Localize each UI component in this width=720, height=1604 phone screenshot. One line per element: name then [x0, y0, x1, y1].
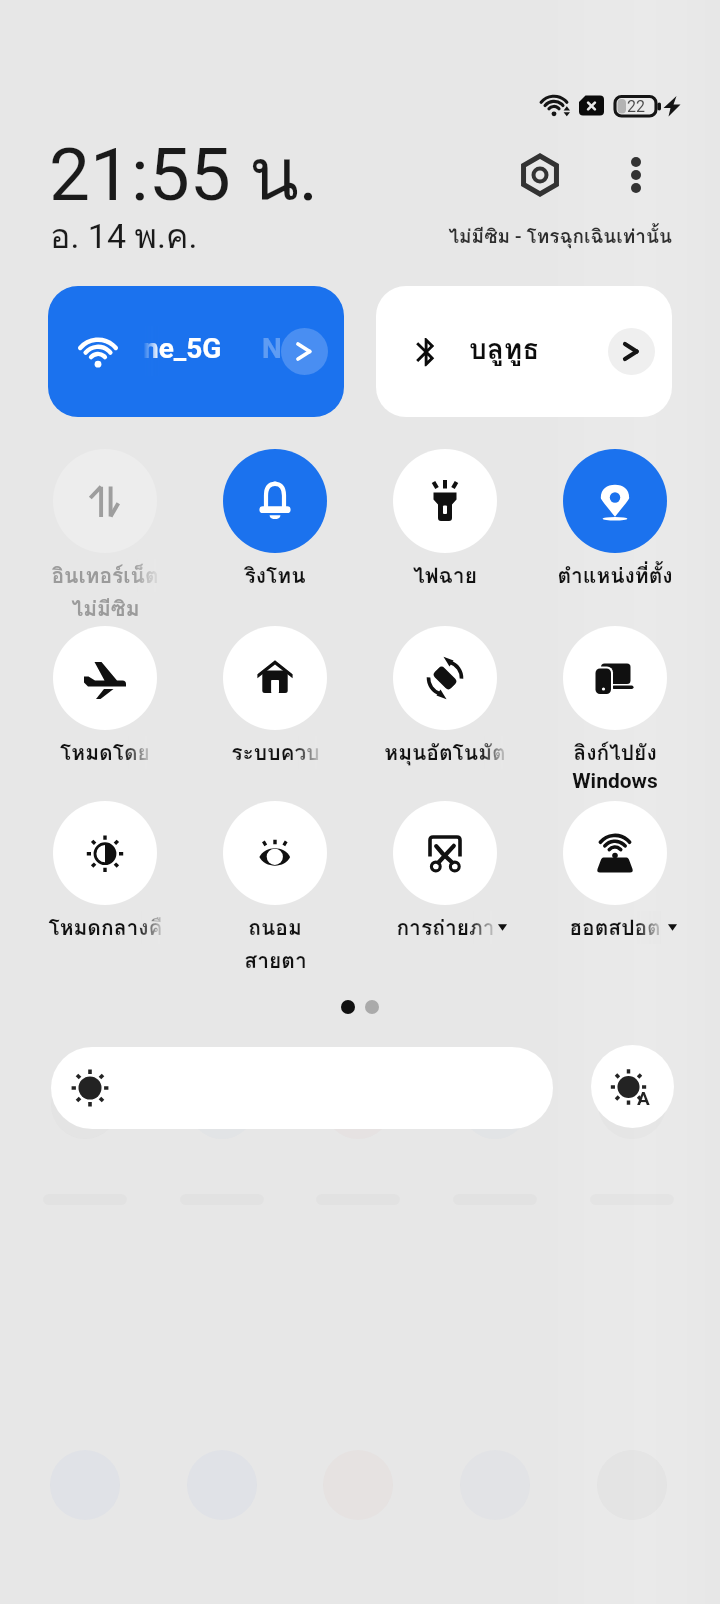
button[interactable]: Bluetooth settings [608, 328, 655, 375]
button[interactable]: ไฟฉาย [393, 449, 497, 553]
staticText: 22 [627, 97, 645, 116]
button[interactable]: บลูทูธ [376, 286, 672, 417]
staticText: ถนอม [248, 911, 302, 944]
staticText: ลิงก์ไปยัง [573, 736, 657, 769]
staticText: บลูทูธ [469, 327, 540, 372]
button[interactable]: ฮอตสปอต [563, 801, 667, 905]
staticText: อ. 14 พ.ค. [50, 209, 198, 263]
staticText: โหมดโดย [60, 736, 150, 769]
button[interactable]: ถนอม [223, 801, 327, 905]
button[interactable]: ตำแหน่งที่ตั้ง [563, 449, 667, 553]
staticText: A [637, 1087, 650, 1109]
staticText: ne_5G [143, 332, 222, 365]
button[interactable]: ระบบควบ [223, 626, 327, 730]
button[interactable]: ne_5G [48, 286, 344, 417]
staticText: ระบบควบ [231, 736, 320, 769]
button[interactable]: Auto brightness [591, 1045, 674, 1128]
staticText: ริงโทน [244, 559, 306, 592]
button[interactable]: อินเทอร์เน็ต [53, 449, 157, 553]
staticText: โหมดกลางคื [48, 911, 163, 944]
button[interactable]: การถ่ายภา options [490, 913, 516, 939]
button[interactable]: โหมดกลางคื [53, 801, 157, 905]
staticText: หมุนอัตโนมัต [384, 736, 506, 769]
button[interactable]: Wi-Fi settings [281, 328, 328, 375]
staticText: N [262, 332, 282, 365]
button[interactable]: Settings [508, 143, 572, 207]
staticText: การถ่ายภา [396, 911, 495, 944]
staticText: ตำแหน่งที่ตั้ง [557, 559, 673, 592]
button[interactable]: More options [604, 143, 668, 207]
staticText: อินเทอร์เน็ต [51, 559, 159, 592]
staticText: ไฟฉาย [413, 559, 477, 592]
button[interactable]: Brightness [51, 1047, 553, 1129]
button[interactable]: ริงโทน [223, 449, 327, 553]
button[interactable]: การถ่ายภา [393, 801, 497, 905]
staticText: ไม่มีซิม [71, 592, 140, 625]
staticText: ไม่มีซิม - โทรฉุกเฉินเท่านั้น [380, 221, 672, 251]
staticText: Windows [572, 769, 658, 794]
button[interactable]: ฮอตสปอต options [660, 913, 686, 939]
staticText: 21:55 น. [49, 116, 319, 232]
button[interactable]: หมุนอัตโนมัต [393, 626, 497, 730]
button[interactable]: โหมดโดย [53, 626, 157, 730]
staticText: สายตา [244, 944, 307, 977]
button[interactable]: ลิงก์ไปยัง [563, 626, 667, 730]
staticText: ฮอตสปอต [569, 911, 661, 944]
